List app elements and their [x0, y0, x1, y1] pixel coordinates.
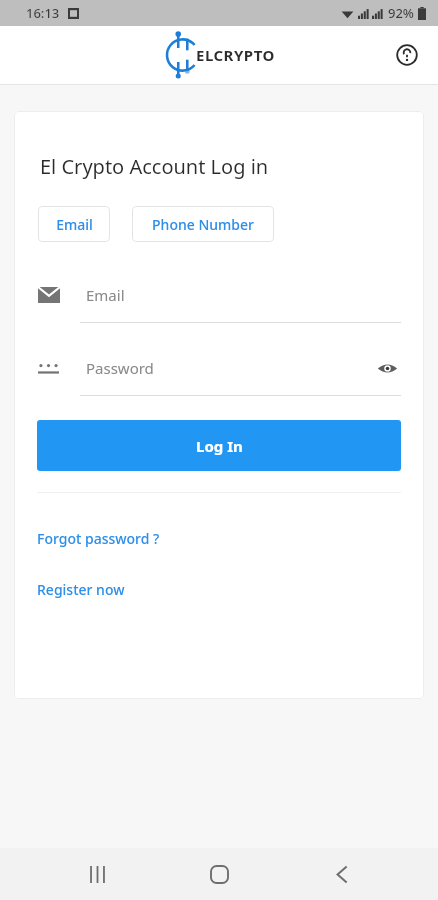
- button[interactable]: Email: [38, 206, 110, 242]
- staticText: ELCRYPTO: [196, 45, 275, 65]
- button[interactable]: Show password: [373, 354, 401, 382]
- staticText: El Crypto Account Log in: [40, 153, 269, 180]
- staticText: Email: [56, 215, 93, 234]
- staticText: 92%: [388, 4, 414, 22]
- button[interactable]: Forgot password ?: [37, 529, 160, 548]
- button[interactable]: Back: [316, 848, 368, 900]
- staticText: Register now: [37, 580, 125, 599]
- staticText: Email: [86, 285, 125, 305]
- staticText: Phone Number: [152, 215, 254, 234]
- button[interactable]: Help: [390, 38, 424, 72]
- button[interactable]: Log In: [37, 420, 401, 471]
- button[interactable]: Phone Number: [132, 206, 274, 242]
- staticText: Password: [86, 358, 154, 378]
- button[interactable]: Register now: [37, 580, 125, 599]
- staticText: Log In: [196, 436, 243, 456]
- button[interactable]: Home: [193, 848, 245, 900]
- staticText: Forgot password ?: [37, 529, 160, 548]
- staticText: 16:13: [26, 4, 60, 22]
- button[interactable]: Recent apps: [71, 848, 123, 900]
